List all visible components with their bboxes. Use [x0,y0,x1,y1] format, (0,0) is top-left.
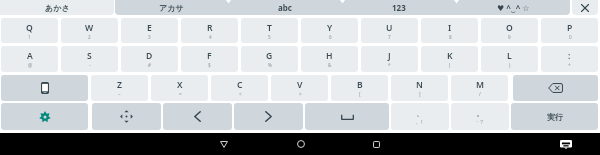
staticText: N [416,79,423,91]
button[interactable]: U [361,18,418,43]
staticText: - [89,62,91,68]
staticText: ･ ？ [476,119,485,125]
button[interactable]: Backspace [513,75,598,101]
button[interactable]: L [481,46,538,72]
staticText: 実行 [547,112,563,122]
staticText: あかさ [45,3,70,13]
button[interactable]: X [151,75,208,101]
staticText: 3 [148,34,151,40]
button[interactable]: B [331,75,388,101]
staticText: 6 [329,34,332,40]
staticText: 9 [508,34,511,40]
staticText: = [179,91,182,97]
staticText: T [267,22,272,34]
staticText: S [87,50,92,62]
button[interactable]: Move cursor [92,103,161,130]
button[interactable]: D [121,46,178,72]
staticText: 、 [416,108,425,119]
button[interactable]: J [361,46,418,72]
staticText: 。 [476,108,485,119]
button[interactable]: O [481,18,538,43]
button[interactable]: abc [228,0,342,15]
button[interactable]: Cursor left [163,103,232,130]
button[interactable]: 、 [391,103,449,130]
staticText: ] [419,91,421,97]
staticText: ♥ ^‿^ ☆ [497,2,530,13]
button[interactable]: R [181,18,238,43]
staticText: A [27,50,33,62]
staticText: $ [208,62,211,68]
staticText: ( [449,62,451,68]
staticText: ~ [118,91,121,97]
button[interactable]: Input mode [1,75,88,101]
button[interactable]: N [391,75,448,101]
button[interactable]: I [421,18,478,43]
button[interactable]: Close keyboard [572,0,598,15]
staticText: D [146,50,153,62]
staticText: W [85,22,94,34]
staticText: F [207,50,212,62]
staticText: % [268,62,272,68]
button[interactable]: C [211,75,268,101]
staticText: abc [278,2,292,13]
button[interactable]: E [121,18,178,43]
button[interactable]: Home [287,133,315,155]
button[interactable]: Y [301,18,358,43]
button[interactable]: V [271,75,328,101]
button[interactable]: P [541,18,598,43]
button[interactable]: Space [305,103,389,130]
button[interactable]: G [241,46,298,72]
button[interactable]: Q [1,18,58,43]
staticText: + [568,62,571,68]
staticText: P [567,22,573,34]
staticText: U [386,22,393,34]
staticText: 5 [268,34,271,40]
button[interactable]: A [1,46,58,72]
button[interactable]: H [301,46,358,72]
staticText: / [479,91,481,97]
staticText: : [568,50,571,62]
staticText: C [237,79,243,91]
button[interactable]: Recents [362,133,390,155]
button[interactable]: アカサ [115,0,228,15]
button[interactable]: K [421,46,478,72]
staticText: J [388,50,391,62]
staticText: Y [327,22,333,34]
staticText: 8 [449,34,452,40]
staticText: ､ ！ [416,119,425,125]
staticText: B [357,79,363,91]
staticText: E [147,22,152,34]
button[interactable]: Z [91,75,148,101]
button[interactable]: 。 [451,103,509,130]
staticText: @ [28,62,33,68]
staticText: Z [117,79,122,91]
staticText: X [177,79,183,91]
staticText: H [326,50,333,62]
staticText: 7 [388,34,391,40]
button[interactable]: : [541,46,598,72]
button[interactable]: Settings [1,103,88,130]
button[interactable]: M [451,75,508,101]
button[interactable]: S [61,46,118,72]
staticText: L [507,50,512,62]
button[interactable]: あかさ [0,0,114,15]
staticText: K [447,50,453,62]
staticText: # [148,62,151,68]
staticText: 2 [88,34,91,40]
button[interactable]: 123 [342,0,456,15]
staticText: * [388,62,391,68]
button[interactable]: Back [210,133,238,155]
button[interactable]: Hide keyboard [552,133,580,155]
button[interactable]: T [241,18,298,43]
button[interactable]: Cursor right [234,103,303,130]
staticText: > [299,91,302,97]
staticText: < [239,91,242,97]
button[interactable]: 実行 [511,103,598,130]
staticText: [ [359,91,361,97]
staticText: V [297,79,303,91]
button[interactable]: F [181,46,238,72]
button[interactable]: W [61,18,118,43]
staticText: R [207,22,213,34]
staticText: アカサ [159,3,184,13]
button[interactable]: ♥ ^‿^ ☆ [456,0,570,15]
